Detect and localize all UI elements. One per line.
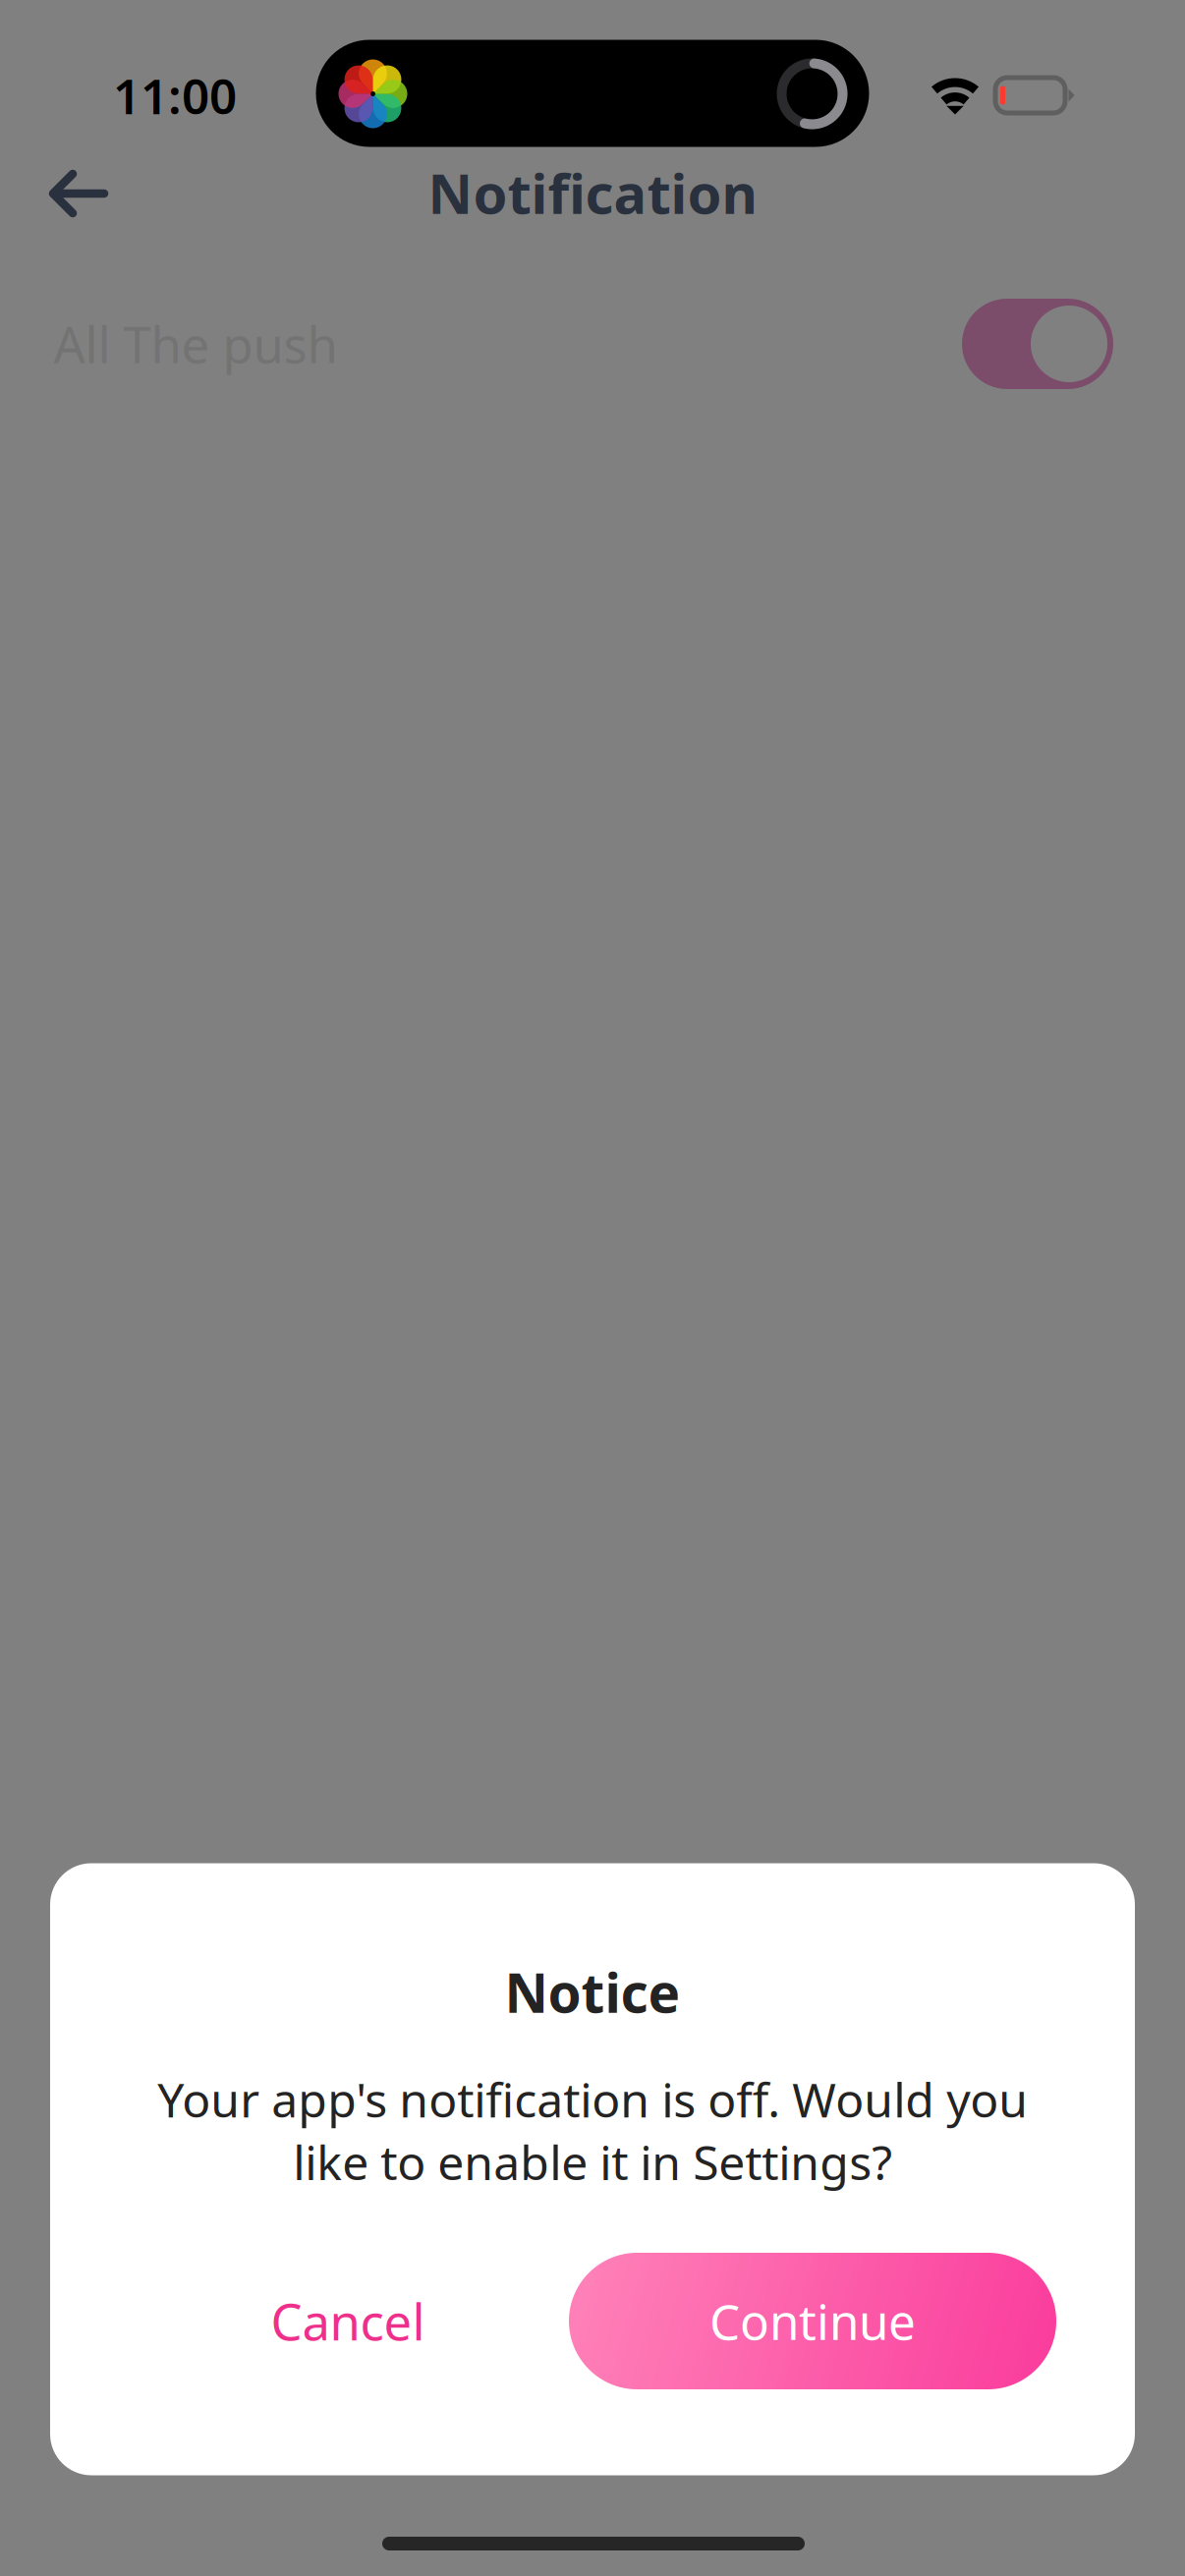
button[interactable]: Back	[24, 144, 134, 243]
button[interactable]: Continue	[569, 2253, 1056, 2389]
staticText: Continue	[709, 2289, 916, 2353]
staticText: Notice	[505, 1956, 680, 2028]
button[interactable]: Cancel	[220, 2253, 476, 2389]
button[interactable]: All The push	[944, 277, 1131, 411]
staticText: Your app's notification is off. Would yo…	[157, 2068, 1028, 2193]
staticText: All The push	[54, 311, 338, 377]
staticText: Notification	[428, 156, 757, 229]
staticText: Cancel	[271, 2288, 425, 2354]
staticText: 11:00	[113, 63, 237, 127]
